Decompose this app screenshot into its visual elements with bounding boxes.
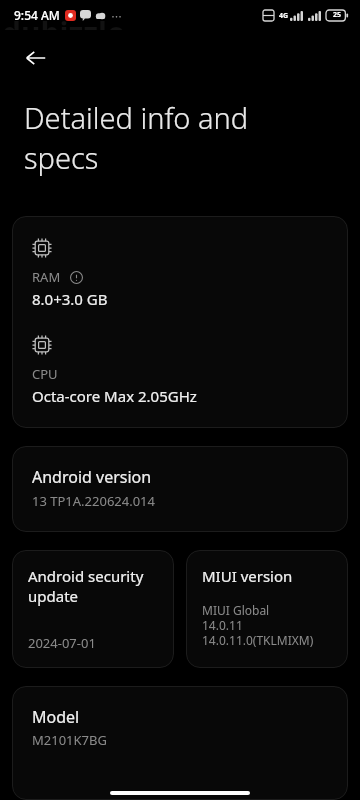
- staticText: RAM: [32, 268, 61, 286]
- staticText: 13 TP1A.220624.014: [32, 492, 155, 510]
- button[interactable]: MIUI version: [186, 550, 348, 668]
- button[interactable]: Android version: [12, 446, 348, 532]
- staticText: Octa-core Max 2.05GHz: [32, 386, 197, 406]
- staticText: 25: [333, 10, 342, 20]
- staticText: 4G: [279, 11, 289, 21]
- staticText: MIUI Global 14.0.11 14.0.11.0(TKLMIXM): [202, 602, 314, 648]
- staticText: 2024-07-01: [28, 634, 96, 652]
- button[interactable]: Back: [14, 36, 58, 80]
- button[interactable]: RAM: [12, 216, 348, 428]
- button[interactable]: Model: [12, 686, 348, 800]
- button[interactable]: RAM info: [67, 268, 85, 286]
- button[interactable]: Android security update: [12, 550, 174, 668]
- staticText: M2101K7BG: [32, 731, 107, 749]
- staticText: 8.0+3.0 GB: [32, 289, 108, 309]
- staticText: CPU: [32, 365, 58, 383]
- staticText: 9:54 AM: [14, 7, 60, 23]
- staticText: Android security update: [28, 566, 144, 606]
- staticText: Model: [32, 706, 80, 728]
- staticText: Detailed info and specs: [24, 98, 249, 178]
- staticText: Android version: [32, 466, 152, 488]
- staticText: MIUI version: [202, 566, 293, 586]
- staticText: dubizzle: [2, 12, 125, 30]
